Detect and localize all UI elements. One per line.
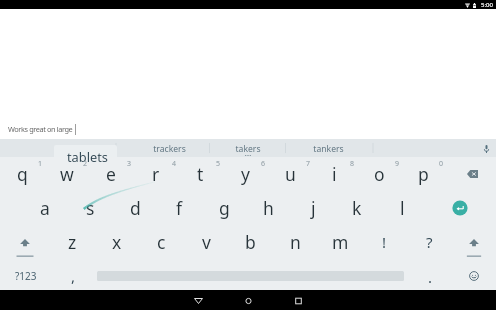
staticText: b [245,230,256,254]
button[interactable]: x [95,226,139,258]
staticText: c [157,230,166,254]
button[interactable]: o [357,158,401,190]
button[interactable]: z [50,226,94,258]
staticText: takers [235,143,261,155]
staticText: q [17,162,28,186]
staticText: tankers [313,143,344,155]
staticText: ? [426,232,433,252]
staticText: e [106,162,116,186]
button[interactable]: Home [243,291,253,310]
button[interactable]: n [273,226,317,258]
staticText: r [152,162,160,186]
staticText: y [241,162,250,186]
button[interactable]: g [202,192,246,224]
staticText: 9 [395,159,400,169]
staticText: 1 [38,159,43,169]
button[interactable]: Emoji [452,260,496,292]
staticText: 6 [261,159,266,169]
button[interactable]: ! [362,226,406,258]
staticText: trackers [153,143,186,155]
staticText: ! [382,232,387,252]
staticText: a [40,196,50,220]
staticText: 5 [216,159,221,169]
staticText: 0 [439,159,444,169]
button[interactable]: u [268,158,312,190]
staticText: g [219,196,230,220]
staticText: x [112,230,122,254]
button[interactable]: tankers [290,140,366,158]
button[interactable]: Shift [3,232,47,264]
button[interactable]: h [246,192,290,224]
button[interactable]: y [223,158,267,190]
staticText: h [263,196,274,220]
staticText: i [332,162,337,186]
button[interactable]: m [318,226,362,258]
button[interactable]: r [134,158,178,190]
button[interactable]: ?123 [6,264,46,288]
staticText: u [285,162,296,186]
button[interactable]: j [291,192,335,224]
staticText: t [197,162,204,186]
staticText: j [311,196,316,220]
button[interactable]: c [139,226,183,258]
button[interactable]: Shift [452,232,496,264]
staticText: z [68,230,77,254]
button[interactable]: . [418,265,442,289]
staticText: p [418,162,429,186]
button[interactable]: k [335,192,379,224]
button[interactable]: i [312,158,356,190]
staticText: , [71,266,76,286]
staticText: w [60,162,74,186]
staticText: n [290,230,301,254]
staticText: 5:00 [481,1,493,9]
staticText: 2 [83,159,88,169]
button[interactable]: Backspace [450,158,494,190]
button[interactable]: e [89,158,133,190]
button[interactable]: Voice input [477,140,495,158]
staticText: Works great on large [8,124,73,134]
button[interactable]: p [401,158,445,190]
staticText: . [428,267,433,287]
button[interactable]: d [113,192,157,224]
button[interactable]: w [45,158,89,190]
staticText: ?123 [15,269,37,283]
staticText: l [400,196,405,220]
staticText: 7 [306,159,311,169]
button[interactable]: , [61,264,85,288]
staticText: m [332,230,349,254]
button[interactable]: Back [193,291,203,310]
staticText: tablets [67,148,108,165]
staticText: s [86,196,95,220]
button[interactable]: s [68,192,112,224]
staticText: 4 [172,159,177,169]
staticText: 3 [127,159,132,169]
staticText: o [374,162,385,186]
staticText: 8 [350,159,355,169]
button[interactable]: t [178,158,222,190]
staticText: k [352,196,362,220]
button[interactable]: f [157,192,201,224]
button[interactable]: l [380,192,424,224]
button[interactable]: b [228,226,272,258]
staticText: d [130,196,141,220]
staticText: f [176,196,183,220]
staticText: v [202,230,211,254]
button[interactable]: Enter [438,192,482,224]
button[interactable]: Recents [293,291,303,310]
button[interactable]: takers [210,140,286,158]
button[interactable]: trackers [131,140,207,158]
button[interactable]: q [0,158,44,190]
button[interactable]: ? [407,226,451,258]
button[interactable]: v [184,226,228,258]
button[interactable]: a [23,192,67,224]
